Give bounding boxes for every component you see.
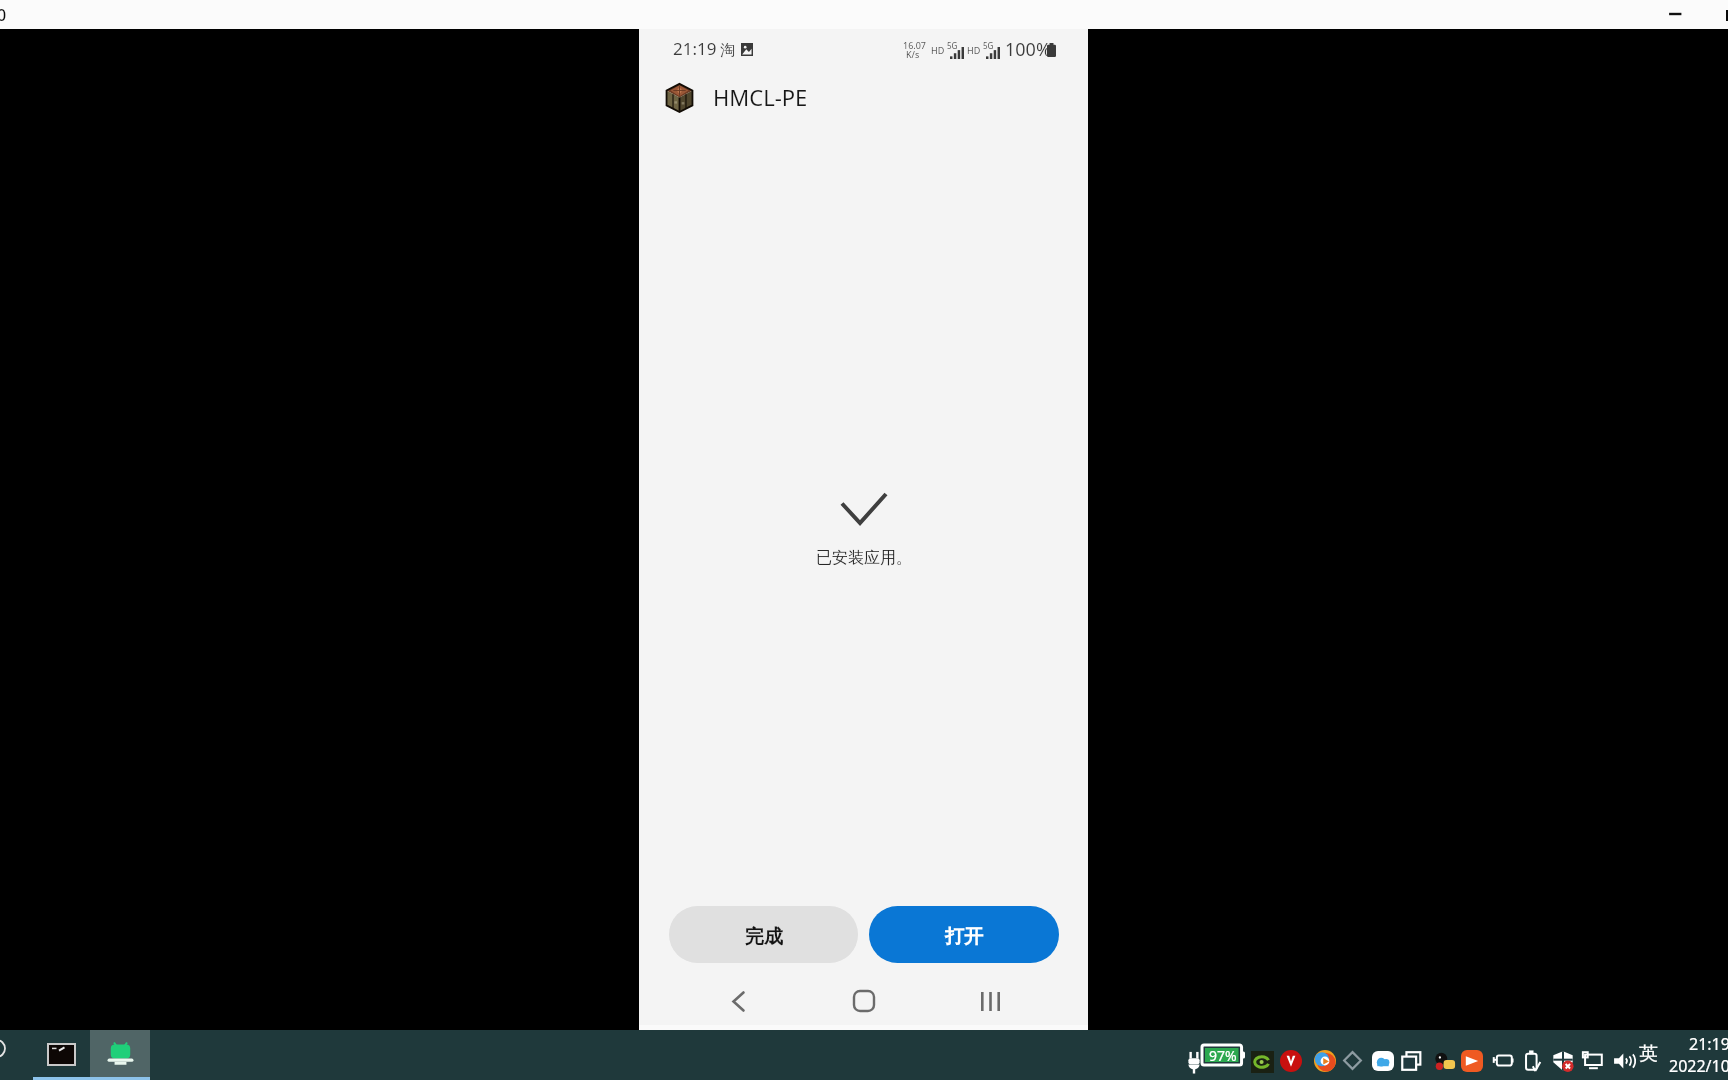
button[interactable]: Back bbox=[708, 971, 768, 1031]
button[interactable]: PotPlayer bbox=[1314, 1050, 1336, 1072]
staticText: 打开 bbox=[945, 925, 983, 949]
button[interactable]: NVIDIA bbox=[1251, 1051, 1274, 1073]
staticText: 0 bbox=[0, 4, 7, 26]
button[interactable]: 完成 bbox=[669, 906, 858, 963]
button[interactable]: Display bbox=[1582, 1051, 1604, 1071]
button[interactable]: Battery 97 percent bbox=[1202, 1045, 1245, 1065]
button[interactable]: USB bbox=[1524, 1049, 1541, 1073]
staticText: 淘 bbox=[720, 41, 735, 60]
button[interactable]: 21:19 bbox=[1664, 1031, 1728, 1080]
staticText: 16.07 bbox=[903, 39, 927, 51]
button[interactable]: 英 bbox=[1634, 1038, 1664, 1068]
button[interactable]: Home bbox=[834, 971, 894, 1031]
staticText: 100% bbox=[1005, 37, 1051, 62]
button[interactable]: Android Emulator bbox=[90, 1030, 150, 1080]
staticText: HD bbox=[931, 44, 945, 56]
button[interactable]: QQ bbox=[1433, 1050, 1456, 1072]
button[interactable]: Recent apps bbox=[960, 971, 1020, 1031]
staticText: 21:19 bbox=[673, 37, 717, 60]
button[interactable]: Battery bbox=[1492, 1052, 1514, 1069]
staticText: HD bbox=[967, 44, 981, 56]
button[interactable]: Security bbox=[1552, 1050, 1574, 1072]
staticText: 5G bbox=[983, 40, 994, 51]
staticText: 2022/10 bbox=[1669, 1055, 1728, 1077]
staticText: 5G bbox=[947, 40, 958, 51]
button[interactable]: 打开 bbox=[869, 906, 1059, 963]
button[interactable]: Minimize bbox=[1661, 6, 1691, 22]
button[interactable]: Terminal bbox=[33, 1030, 90, 1080]
button[interactable]: Diamond bbox=[1343, 1051, 1362, 1070]
button[interactable]: Copy bbox=[1401, 1051, 1422, 1071]
staticText: 97% bbox=[1209, 1046, 1237, 1065]
staticText: 完成 bbox=[745, 925, 783, 949]
button[interactable]: Player bbox=[1461, 1050, 1483, 1072]
button[interactable]: Vivaldi bbox=[1280, 1050, 1302, 1072]
staticText: K/s bbox=[906, 48, 920, 60]
staticText: 英 bbox=[1639, 1042, 1658, 1066]
button[interactable]: Power bbox=[1187, 1051, 1201, 1074]
button[interactable]: Cloud bbox=[1372, 1051, 1394, 1071]
staticText: 已安装应用。 bbox=[816, 548, 912, 568]
button[interactable]: Volume bbox=[1611, 1051, 1633, 1071]
staticText: HMCL-PE bbox=[713, 82, 808, 112]
staticText: 21:19 bbox=[1689, 1033, 1728, 1055]
